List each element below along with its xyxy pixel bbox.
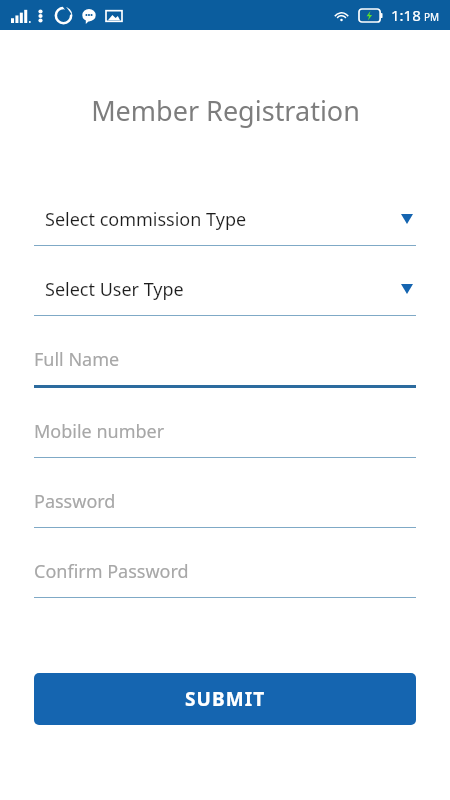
- button[interactable]: Confirm Password: [34, 554, 416, 598]
- staticText: Select User Type: [45, 277, 184, 302]
- staticText: PM: [424, 10, 440, 24]
- button[interactable]: Full Name: [34, 342, 416, 388]
- staticText: Mobile number: [34, 419, 165, 444]
- button[interactable]: Select commission Type: [34, 202, 416, 246]
- staticText: SUBMIT: [185, 686, 266, 712]
- staticText: 1:18: [391, 5, 421, 25]
- staticText: Confirm Password: [34, 559, 189, 584]
- staticText: Full Name: [34, 347, 120, 372]
- button[interactable]: Select User Type: [34, 272, 416, 316]
- staticText: Password: [34, 489, 116, 514]
- button[interactable]: SUBMIT: [34, 673, 416, 725]
- button[interactable]: Password: [34, 484, 416, 528]
- staticText: Select commission Type: [45, 207, 247, 232]
- button[interactable]: Mobile number: [34, 414, 416, 458]
- staticText: Member Registration: [91, 92, 360, 129]
